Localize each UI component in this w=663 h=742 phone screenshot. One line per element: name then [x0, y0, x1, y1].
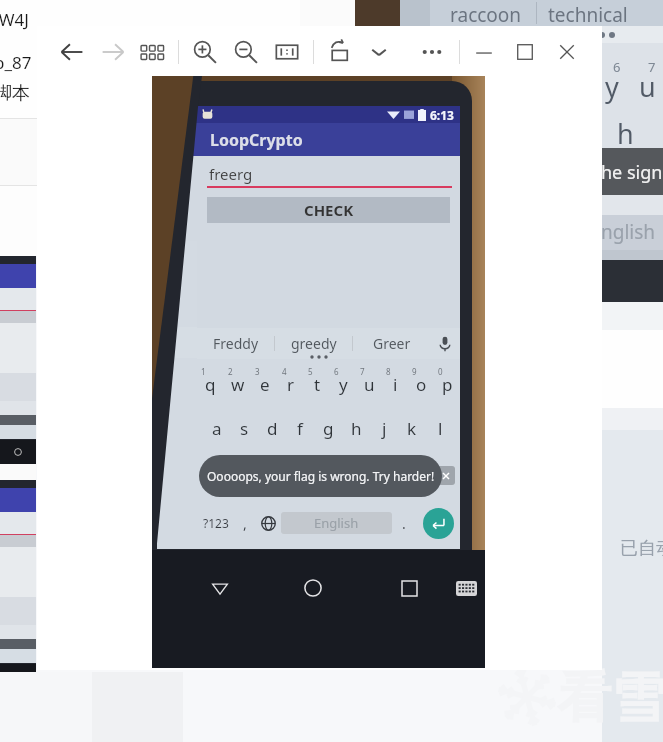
button[interactable]: 1: [197, 366, 224, 396]
staticText: 7: [648, 58, 656, 76]
button[interactable]: 3: [251, 366, 278, 396]
button[interactable]: 0: [434, 366, 460, 396]
button[interactable]: 2: [224, 366, 251, 396]
button[interactable]: Recent apps: [391, 570, 427, 606]
staticText: ?123: [203, 515, 229, 531]
button[interactable]: h: [342, 413, 370, 443]
staticText: l: [438, 417, 443, 440]
staticText: English: [314, 514, 359, 532]
button[interactable]: Zoom in: [187, 31, 223, 73]
staticText: 9: [412, 366, 417, 377]
button[interactable]: ?123: [197, 504, 235, 542]
button[interactable]: Back: [202, 570, 238, 606]
button[interactable]: More: [414, 31, 450, 73]
staticText: o: [416, 373, 427, 396]
button[interactable]: Change language: [255, 504, 281, 542]
staticText: 脚本: [0, 82, 30, 105]
staticText: d: [267, 417, 278, 440]
button[interactable]: g: [314, 413, 342, 443]
button[interactable]: Home: [295, 570, 331, 606]
staticText: freerg: [209, 164, 253, 184]
button[interactable]: Rotate: [322, 31, 358, 73]
staticText: .: [402, 514, 406, 533]
staticText: 6: [334, 366, 339, 377]
button[interactable]: Shift: [197, 458, 235, 492]
staticText: 2: [228, 366, 233, 377]
staticText: y: [339, 373, 348, 396]
button[interactable]: 6: [330, 366, 356, 396]
staticText: p: [442, 373, 453, 396]
button[interactable]: Zoom out: [228, 31, 264, 73]
staticText: 6: [613, 58, 621, 76]
staticText: ,: [243, 514, 247, 533]
button[interactable]: Enter: [416, 504, 460, 542]
staticText: r: [287, 373, 295, 396]
button[interactable]: Thumbnails: [134, 31, 170, 73]
button[interactable]: Forward: [95, 31, 131, 73]
button[interactable]: CHECK: [207, 197, 450, 223]
staticText: nglish: [601, 219, 656, 245]
button[interactable]: Voice input: [430, 328, 460, 359]
staticText: 7: [360, 366, 365, 377]
staticText: k: [407, 417, 417, 440]
staticText: j: [382, 417, 387, 440]
button[interactable]: greedy: [275, 328, 352, 359]
button[interactable]: l: [426, 413, 454, 443]
button[interactable]: 4: [278, 366, 304, 396]
button[interactable]: Fit options: [361, 31, 397, 73]
button[interactable]: j: [370, 413, 398, 443]
staticText: u: [639, 68, 656, 105]
staticText: u: [364, 373, 375, 396]
button[interactable]: Minimize: [466, 31, 502, 73]
button[interactable]: 7: [356, 366, 382, 396]
staticText: 5: [308, 366, 313, 377]
button[interactable]: 8: [382, 366, 408, 396]
staticText: Freddy: [213, 334, 259, 353]
button[interactable]: Close: [549, 31, 585, 73]
staticText: h: [351, 417, 362, 440]
staticText: a: [212, 417, 222, 440]
staticText: LoopCrypto: [210, 129, 303, 151]
staticText: 0: [438, 366, 443, 377]
staticText: 8: [386, 366, 391, 377]
staticText: g: [323, 417, 334, 440]
button[interactable]: Maximize: [507, 31, 543, 73]
staticText: technical: [548, 2, 628, 28]
staticText: 6:13: [430, 107, 454, 123]
staticText: Ooooops, your flag is wrong. Try harder!: [207, 468, 435, 484]
staticText: 1: [201, 366, 206, 377]
staticText: raccoon: [450, 2, 522, 28]
button[interactable]: Delete: [430, 458, 460, 492]
button[interactable]: Actual size: [269, 31, 305, 73]
staticText: CHECK: [304, 200, 354, 220]
button[interactable]: Back: [54, 31, 90, 73]
staticText: q: [205, 373, 216, 396]
button[interactable]: 5: [304, 366, 330, 396]
button[interactable]: .: [392, 504, 416, 542]
button[interactable]: s: [230, 413, 258, 443]
button[interactable]: Freddy: [197, 328, 274, 359]
button[interactable]: Greer: [353, 328, 430, 359]
staticText: he signatu: [601, 160, 663, 185]
staticText: t: [314, 373, 321, 396]
staticText: e: [260, 373, 270, 396]
button[interactable]: a: [203, 413, 230, 443]
staticText: Greer: [373, 334, 411, 353]
button[interactable]: 9: [408, 366, 434, 396]
staticText: 4: [282, 366, 287, 377]
staticText: y: [605, 68, 619, 105]
staticText: h: [617, 115, 634, 152]
staticText: greedy: [291, 334, 337, 353]
button[interactable]: Keyboard: [448, 570, 484, 606]
button[interactable]: k: [398, 413, 426, 443]
button[interactable]: ,: [235, 504, 255, 542]
staticText: 已自动: [620, 537, 663, 560]
button[interactable]: d: [258, 413, 286, 443]
staticText: i: [393, 373, 398, 396]
staticText: f: [297, 417, 303, 440]
staticText: w: [231, 373, 245, 396]
button[interactable]: English: [281, 512, 392, 534]
staticText: 看雪: [557, 664, 663, 732]
button[interactable]: f: [286, 413, 314, 443]
staticText: 3: [255, 366, 260, 377]
